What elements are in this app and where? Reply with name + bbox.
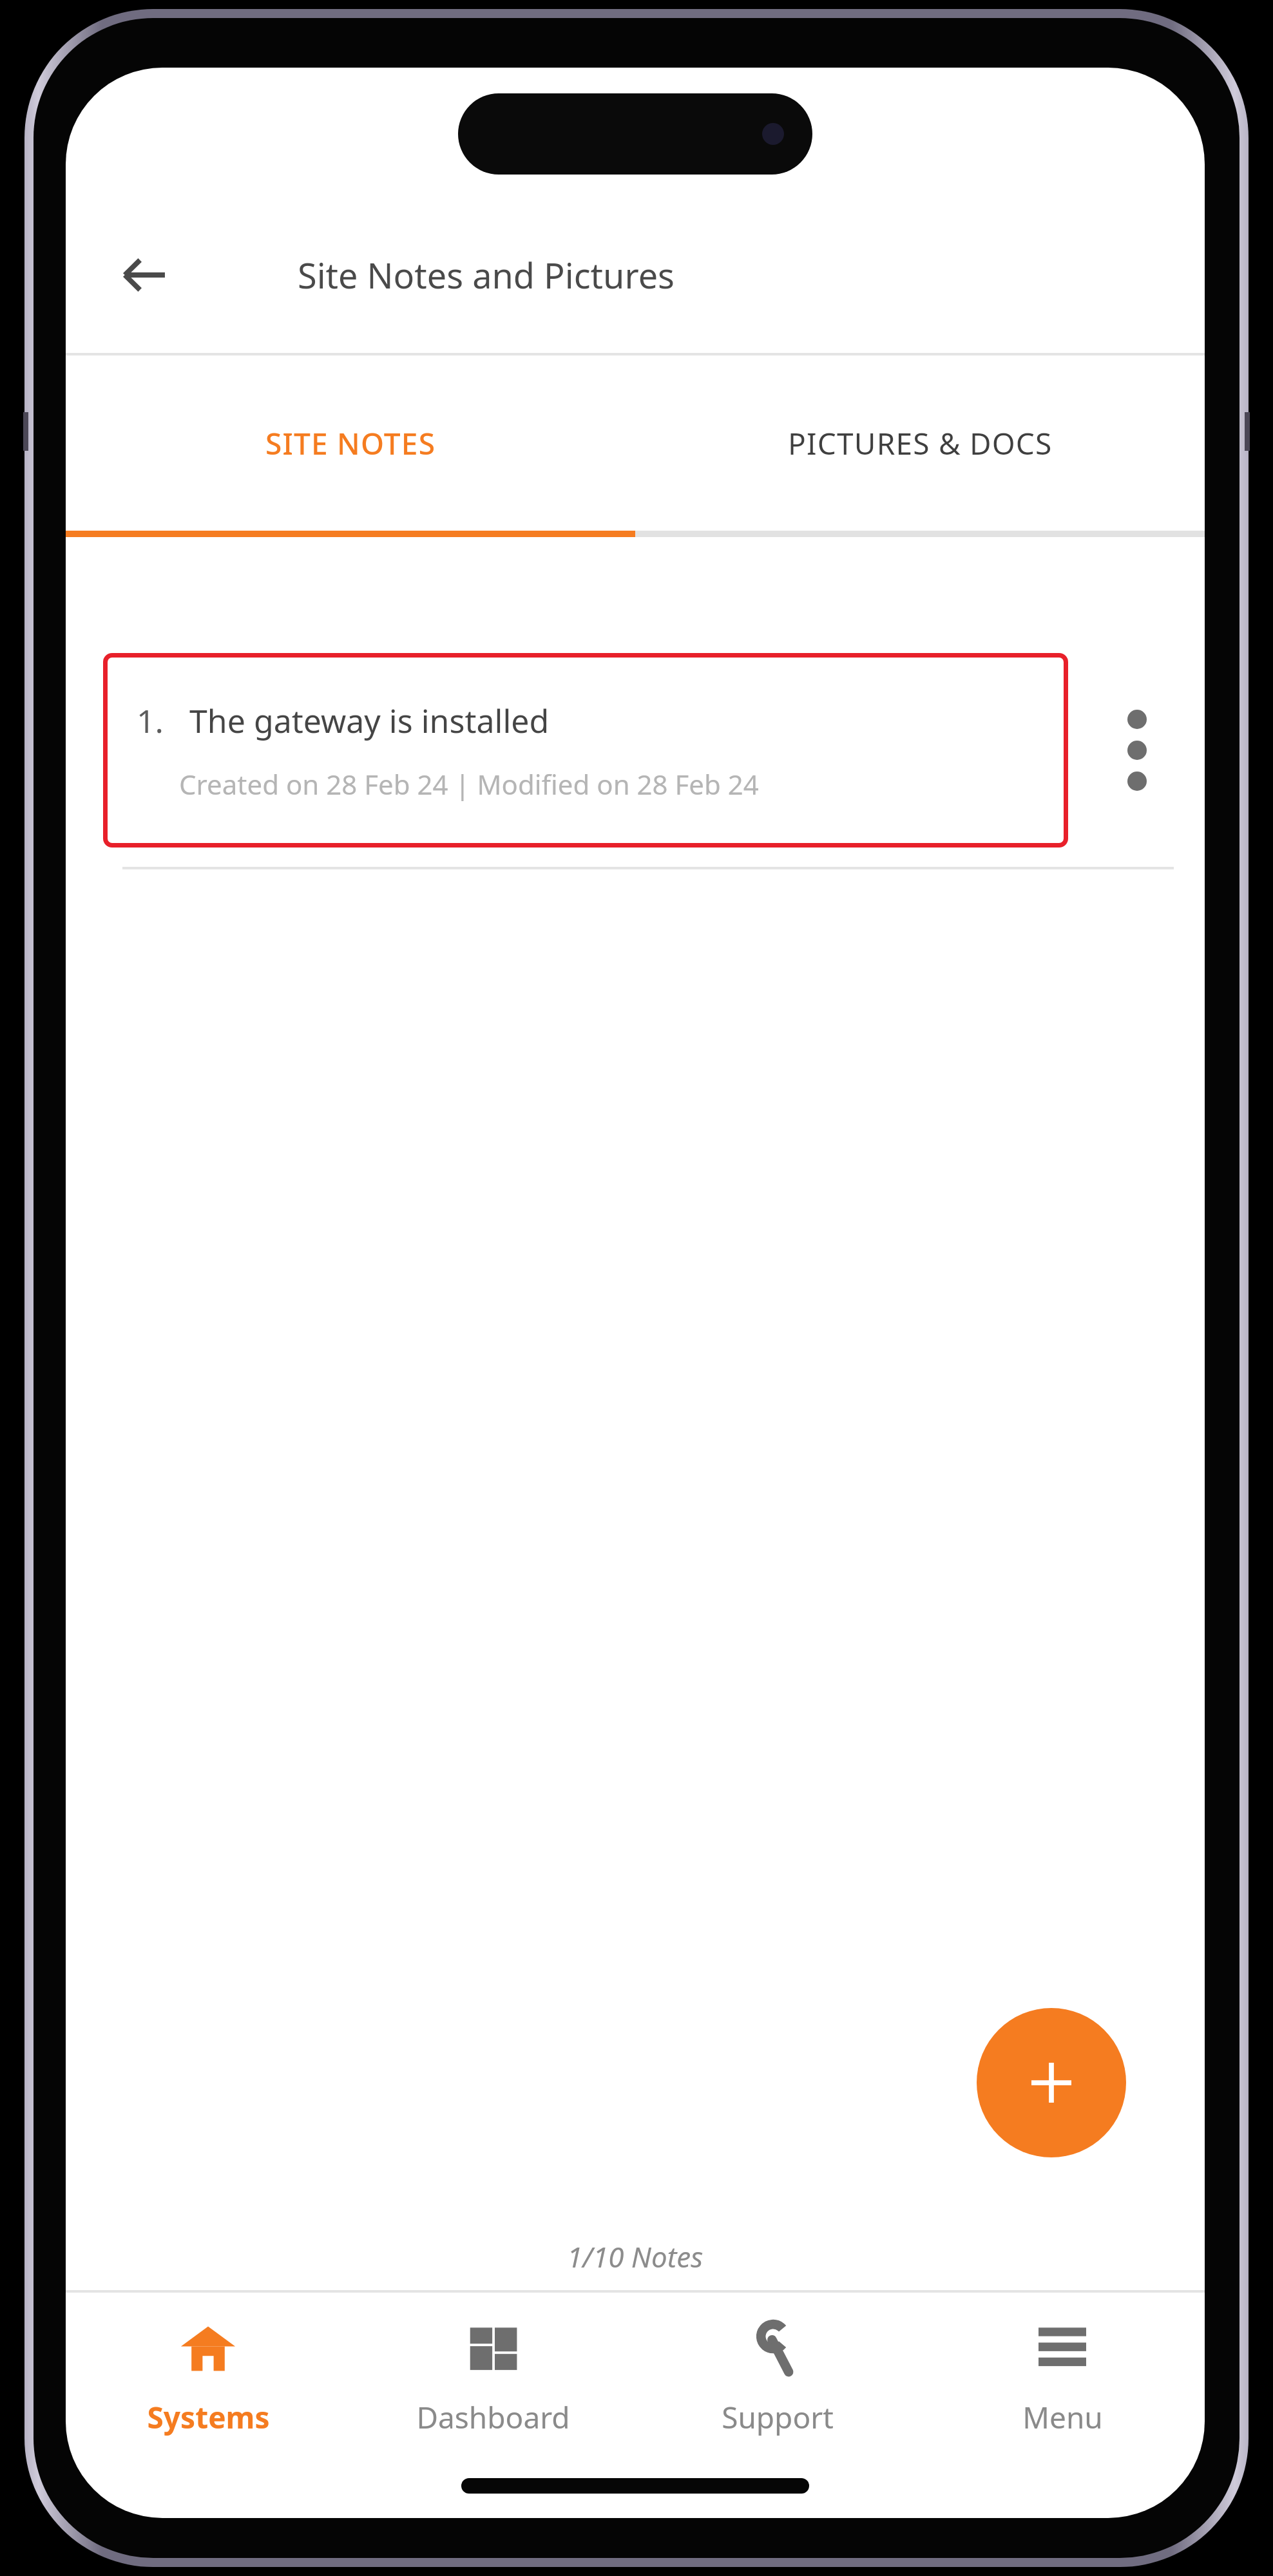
button[interactable]: PICTURES & DOCS: [635, 355, 1205, 531]
staticText: Created on 28 Feb 24 | Modified on 28 Fe…: [179, 766, 759, 802]
staticText: SITE NOTES: [265, 423, 436, 464]
staticText: 1.: [137, 699, 164, 743]
staticText: PICTURES & DOCS: [788, 423, 1053, 464]
button[interactable]: Systems: [66, 2293, 350, 2454]
button[interactable]: Menu: [920, 2293, 1205, 2454]
staticText: 1/10 Notes: [567, 2237, 703, 2276]
button[interactable]: More options: [1095, 699, 1179, 802]
button[interactable]: Add note: [977, 2008, 1126, 2157]
staticText: Systems: [147, 2397, 270, 2438]
staticText: Dashboard: [416, 2397, 570, 2438]
button[interactable]: SITE NOTES: [66, 355, 635, 531]
staticText: Support: [722, 2397, 834, 2438]
button[interactable]: 1.: [103, 653, 1068, 848]
staticText: The gateway is installed: [189, 699, 550, 743]
staticText: Menu: [1022, 2397, 1103, 2438]
button[interactable]: Dashboard: [350, 2293, 635, 2454]
button[interactable]: Support: [635, 2293, 920, 2454]
button[interactable]: Back: [106, 236, 183, 314]
staticText: Site Notes and Pictures: [298, 251, 675, 299]
